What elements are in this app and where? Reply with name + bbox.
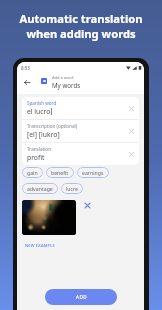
staticText: 8:53 — [21, 65, 30, 71]
staticText: advantage — [27, 185, 53, 192]
staticText: My words — [52, 81, 81, 89]
staticText: lucre — [66, 185, 78, 192]
staticText: NEW EXAMPLE — [25, 243, 55, 248]
button[interactable]: Back — [21, 76, 33, 88]
button[interactable]: Transcription (optional) — [22, 120, 139, 142]
button[interactable]: Spanish word — [22, 97, 139, 119]
button[interactable]: Clear — [126, 126, 136, 136]
button[interactable]: Clear — [126, 149, 136, 159]
staticText: earnings — [82, 169, 104, 176]
staticText: Add a word — [52, 75, 74, 80]
staticText: Spanish word — [27, 100, 57, 106]
button[interactable]: Remove image — [82, 200, 93, 211]
staticText: [el] [lukro] — [27, 130, 60, 139]
button[interactable]: Translation — [22, 143, 139, 165]
button[interactable]: benefit — [46, 167, 74, 178]
button[interactable]: Clear — [126, 103, 136, 113]
button[interactable]: advantage — [22, 183, 58, 194]
staticText: ADD — [76, 294, 87, 300]
staticText: Translation — [27, 146, 51, 152]
button[interactable]: lucre — [61, 183, 83, 194]
staticText: Automatic translation when adding words — [0, 11, 162, 42]
button[interactable]: gain — [22, 167, 43, 178]
staticText: gain — [27, 169, 38, 176]
staticText: Transcription (optional) — [27, 123, 78, 129]
staticText: el lucro — [27, 107, 51, 116]
button[interactable]: NEW EXAMPLE — [22, 240, 58, 251]
button[interactable]: ADD — [45, 289, 117, 305]
button[interactable]: earnings — [77, 167, 109, 178]
staticText: benefit — [51, 169, 69, 176]
staticText: profit — [27, 153, 45, 162]
